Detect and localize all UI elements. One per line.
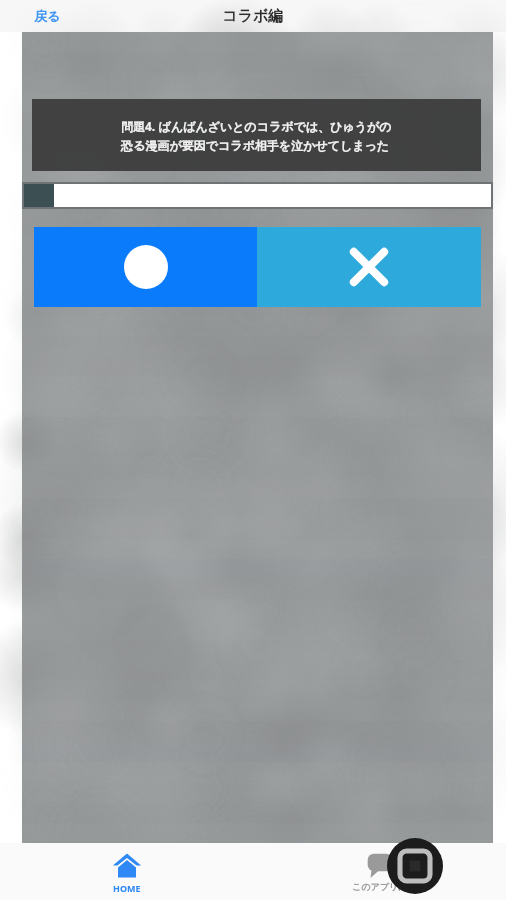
button[interactable]: HOME (0, 843, 253, 900)
staticText: このアプリは (352, 881, 408, 892)
button[interactable]: Stop recording (387, 838, 443, 894)
button[interactable]: Maru, answer true (34, 227, 257, 307)
staticText: HOME (113, 882, 141, 894)
staticText: コラボ編 (222, 7, 284, 26)
button[interactable]: 戻る (30, 5, 65, 27)
button[interactable] (24, 184, 491, 207)
staticText: 戻る (34, 8, 61, 24)
button[interactable]: このアプリは (253, 843, 506, 900)
button[interactable]: Batsu, answer false (257, 227, 481, 307)
staticText: 問題4. ばんばんざいとのコラボでは、ひゅうがの (121, 118, 392, 134)
staticText: 恐る漫画が要因でコラボ相手を泣かせてしまった (121, 138, 389, 153)
